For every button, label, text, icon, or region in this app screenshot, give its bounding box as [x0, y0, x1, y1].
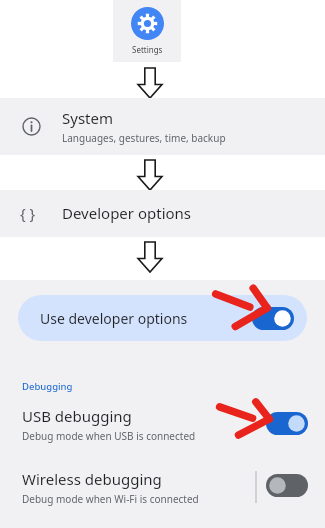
- button[interactable]: Wireless debugging: [0, 463, 325, 518]
- button[interactable]: Use developer options: [18, 295, 307, 341]
- staticText: Wireless debugging: [22, 469, 162, 489]
- staticText: Use developer options: [40, 309, 188, 328]
- button[interactable]: Toggle on: [266, 412, 308, 435]
- button[interactable]: Toggle off: [266, 474, 308, 497]
- staticText: { }: [20, 203, 36, 223]
- button[interactable]: System: [0, 98, 325, 155]
- button[interactable]: Toggle on: [252, 307, 294, 330]
- button[interactable]: USB debugging: [0, 400, 325, 452]
- staticText: Developer options: [62, 203, 192, 223]
- button[interactable]: Settings app: [113, 0, 181, 62]
- button[interactable]: { }: [0, 190, 325, 237]
- staticText: System: [62, 108, 113, 128]
- staticText: Debug mode when USB is connected: [22, 429, 196, 443]
- staticText: Languages, gestures, time, backup: [62, 131, 226, 145]
- staticText: Debugging: [22, 380, 73, 393]
- staticText: Settings: [132, 44, 163, 55]
- staticText: USB debugging: [22, 406, 132, 426]
- staticText: Debug mode when Wi-Fi is connected: [22, 492, 199, 506]
